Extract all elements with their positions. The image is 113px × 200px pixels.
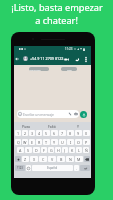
staticText: 8 bbox=[69, 131, 72, 136]
button[interactable]: O bbox=[75, 139, 82, 145]
button[interactable]: Ñ bbox=[83, 147, 89, 153]
staticText: a chatear! bbox=[35, 14, 78, 27]
staticText: 11:23 bbox=[65, 47, 73, 51]
staticText: J bbox=[64, 148, 66, 153]
button[interactable]: 3 bbox=[29, 130, 35, 136]
button[interactable]: T bbox=[43, 139, 50, 145]
staticText: 3 bbox=[31, 131, 34, 136]
staticText: M bbox=[77, 157, 81, 162]
staticText: ?123 bbox=[17, 166, 23, 170]
staticText: Ñ bbox=[85, 148, 88, 153]
button[interactable]: 6 bbox=[51, 130, 58, 136]
staticText: ¡Listo, basta empezar bbox=[11, 1, 103, 14]
staticText: L bbox=[78, 148, 80, 153]
button[interactable]: Call bbox=[74, 56, 80, 62]
button[interactable]: 0 bbox=[83, 130, 90, 136]
button[interactable]: 2 bbox=[22, 130, 28, 136]
staticText: 9 bbox=[77, 131, 80, 136]
button[interactable]: Faltó bbox=[39, 122, 65, 130]
staticText: K bbox=[71, 148, 74, 153]
staticText: 2 bbox=[24, 131, 27, 136]
staticText: Español bbox=[47, 166, 58, 170]
button[interactable]: Y bbox=[51, 139, 58, 145]
staticText: HOY bbox=[67, 68, 72, 71]
button[interactable]: 4 bbox=[36, 130, 42, 136]
staticText: 5 bbox=[45, 131, 48, 136]
button[interactable]: +54 9 11 2709 8123 bbox=[30, 56, 64, 61]
button[interactable]: S bbox=[25, 147, 32, 153]
button[interactable]: 5 bbox=[43, 130, 50, 136]
button[interactable]: Z bbox=[22, 156, 29, 162]
staticText: S bbox=[27, 148, 30, 153]
staticText: U bbox=[61, 140, 64, 145]
staticText: F bbox=[43, 148, 45, 153]
button[interactable]: Y bbox=[65, 122, 91, 130]
button[interactable]: E bbox=[29, 139, 35, 145]
button[interactable]: ?123 bbox=[15, 165, 25, 171]
staticText: 1 bbox=[17, 131, 20, 136]
button[interactable]: A bbox=[17, 147, 24, 153]
button[interactable] bbox=[23, 56, 28, 61]
button[interactable]: Pizza bbox=[14, 122, 39, 130]
button[interactable]: V bbox=[48, 156, 56, 162]
staticText: X bbox=[33, 157, 36, 162]
staticText: Pizza bbox=[22, 124, 31, 129]
button[interactable]: More options bbox=[83, 56, 89, 62]
button[interactable]: . bbox=[74, 165, 79, 171]
button[interactable]: I bbox=[67, 139, 74, 145]
button[interactable]: Q bbox=[15, 139, 21, 145]
staticText: 6 bbox=[53, 131, 56, 136]
staticText: 0 bbox=[85, 131, 88, 136]
button[interactable]: R bbox=[36, 139, 42, 145]
button[interactable]: Record voice message bbox=[80, 111, 87, 118]
staticText: Q bbox=[17, 140, 20, 145]
button[interactable]: D bbox=[33, 147, 40, 153]
button[interactable]: L bbox=[76, 147, 82, 153]
staticText: . bbox=[76, 166, 77, 171]
staticText: T bbox=[45, 140, 48, 145]
button[interactable]: 9 bbox=[75, 130, 82, 136]
button[interactable]: W bbox=[22, 139, 28, 145]
staticText: R bbox=[38, 140, 41, 145]
button[interactable]: P bbox=[83, 139, 90, 145]
button[interactable]: Escribe un mensaje bbox=[17, 110, 79, 118]
button[interactable]: Español bbox=[32, 165, 73, 171]
staticText: 7 bbox=[61, 131, 64, 136]
button[interactable]: F bbox=[41, 147, 47, 153]
staticText: I bbox=[70, 140, 72, 145]
button[interactable]: K bbox=[69, 147, 75, 153]
button[interactable]: G bbox=[48, 147, 54, 153]
button[interactable]: Video call bbox=[63, 56, 70, 63]
staticText: 4 bbox=[38, 131, 41, 136]
button[interactable]: 8 bbox=[67, 130, 74, 136]
button[interactable]: Emoji bbox=[26, 165, 31, 171]
staticText: MENSAJES CIFRADOS bbox=[29, 68, 49, 71]
button[interactable]: M bbox=[75, 156, 83, 162]
button[interactable]: B bbox=[57, 156, 65, 162]
staticText: +54 9 11 2709 8123 bbox=[30, 56, 64, 61]
button[interactable]: 7 bbox=[59, 130, 66, 136]
staticText: N bbox=[69, 157, 72, 162]
button[interactable]: H bbox=[55, 147, 61, 153]
staticText: A bbox=[19, 148, 22, 153]
button[interactable]: HOY bbox=[61, 67, 77, 71]
staticText: O bbox=[77, 140, 80, 145]
button[interactable]: N bbox=[66, 156, 74, 162]
button[interactable]: Shift bbox=[15, 156, 21, 162]
button[interactable]: U bbox=[59, 139, 66, 145]
button[interactable]: 1 bbox=[15, 130, 21, 136]
button[interactable]: X bbox=[30, 156, 38, 162]
button[interactable]: MENSAJES CIFRADOS bbox=[29, 67, 49, 71]
staticText: C bbox=[42, 157, 45, 162]
staticText: V bbox=[51, 157, 54, 162]
button[interactable]: Back bbox=[14, 56, 20, 62]
button[interactable]: J bbox=[62, 147, 68, 153]
button[interactable]: Enter bbox=[80, 165, 90, 171]
button[interactable]: Backspace bbox=[84, 156, 90, 162]
staticText: Faltó bbox=[48, 124, 56, 129]
button[interactable]: C bbox=[39, 156, 47, 162]
staticText: Escribe un mensaje bbox=[23, 112, 54, 117]
staticText: E bbox=[31, 140, 34, 145]
staticText: H bbox=[57, 148, 60, 153]
staticText: Z bbox=[24, 157, 27, 162]
